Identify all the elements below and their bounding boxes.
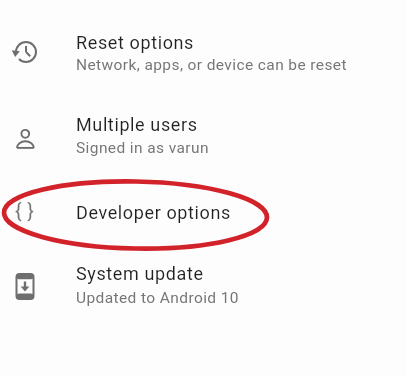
staticText: Reset options xyxy=(76,32,195,53)
staticText: Multiple users xyxy=(76,114,198,135)
staticText: Updated to Android 10 xyxy=(76,289,239,307)
staticText: Signed in as varun xyxy=(76,139,209,157)
staticText: Network, apps, or device can be reset xyxy=(76,56,347,74)
button[interactable] xyxy=(0,252,407,328)
button[interactable] xyxy=(0,16,407,92)
staticText: System update xyxy=(76,263,204,284)
button[interactable] xyxy=(0,184,407,242)
staticText: Developer options xyxy=(76,202,231,223)
button[interactable] xyxy=(0,98,407,174)
staticText: { } xyxy=(15,200,35,223)
